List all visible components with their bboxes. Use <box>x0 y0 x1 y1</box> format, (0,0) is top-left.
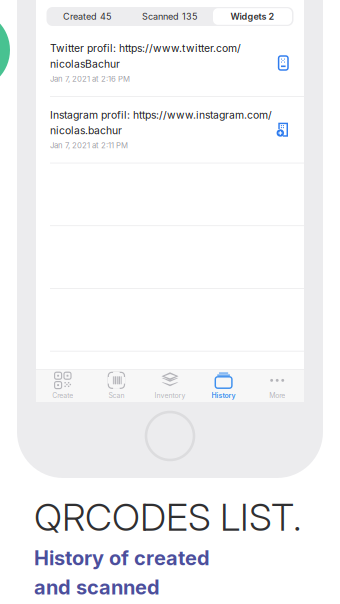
staticText: Instagram profil: https://www.instagram.… <box>50 109 272 121</box>
staticText: Widgets 2 <box>230 11 274 22</box>
button[interactable]: Twitter profil: https://www.twitter.com/ <box>36 30 304 96</box>
staticText: Create <box>52 391 73 400</box>
button[interactable]: Created 45 <box>46 7 128 26</box>
staticText: Inventory <box>154 391 185 400</box>
button[interactable]: Scan <box>90 370 143 402</box>
staticText: History <box>212 391 236 400</box>
staticText: History of created <box>34 546 210 570</box>
staticText: Twitter profil: https://www.twitter.com/ <box>50 42 241 55</box>
button[interactable]: Create <box>36 370 90 402</box>
staticText: More <box>269 391 285 400</box>
staticText: Jan 7, 2021 at 2:11 PM <box>50 141 128 150</box>
staticText: Created 45 <box>63 11 112 22</box>
button[interactable]: More <box>250 370 304 402</box>
staticText: nicolas.bachur <box>50 124 122 137</box>
staticText: Jan 7, 2021 at 2:16 PM <box>50 74 130 84</box>
staticText: Scanned 135 <box>142 11 198 22</box>
button[interactable]: Instagram profil: https://www.instagram.… <box>36 97 304 163</box>
staticText: and scanned <box>34 575 160 599</box>
button[interactable]: Inventory <box>143 370 197 402</box>
staticText: QRCODES LIST. <box>34 494 302 540</box>
staticText: nicolasBachur <box>50 58 120 70</box>
button[interactable]: Widgets 2 <box>211 7 293 26</box>
button[interactable]: History <box>197 370 250 402</box>
button[interactable]: Scanned 135 <box>128 7 211 26</box>
staticText: Scan <box>108 391 124 400</box>
